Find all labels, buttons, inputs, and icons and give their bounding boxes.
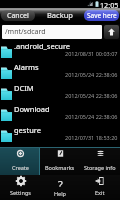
staticText: 2012/07/31 18:53:20: [65, 134, 118, 141]
staticText: Bookmarks: [45, 164, 75, 171]
staticText: Cancel: [7, 11, 29, 21]
staticText: gesture: [14, 125, 41, 135]
staticText: Create: [12, 164, 29, 171]
staticText: Backup: [47, 10, 73, 20]
staticText: Alarms: [14, 62, 39, 72]
button[interactable]: DCIM: [0, 82, 120, 103]
staticText: 2012/05/24 22:38:06: [65, 113, 118, 120]
staticText: ?: [58, 177, 63, 187]
staticText: Help: [54, 190, 66, 197]
staticText: DCIM: [14, 83, 34, 93]
button[interactable]: Save here: [84, 10, 119, 21]
staticText: Save here: [87, 11, 117, 20]
button[interactable]: Settings: [0, 175, 40, 200]
staticText: 2012/08/31 00:03:07: [65, 50, 118, 57]
button[interactable]: gesture: [0, 124, 120, 145]
staticText: .android_secure: [14, 41, 71, 51]
button[interactable]: Bookmarks: [40, 148, 80, 175]
staticText: Settings: [10, 189, 31, 196]
staticText: Exit: [95, 189, 105, 196]
button[interactable]: ?: [40, 175, 80, 200]
button[interactable]: Up one level: [104, 25, 119, 39]
button[interactable]: Alarms: [0, 61, 120, 82]
staticText: 12:05: [100, 0, 119, 8]
button[interactable]: Exit: [80, 175, 120, 200]
staticText: Storage info: [84, 164, 116, 171]
button[interactable]: Storage info: [80, 148, 120, 175]
button[interactable]: .android_secure: [0, 40, 120, 61]
button[interactable]: Download: [0, 103, 120, 124]
staticText: /mnt/sdcard: [5, 27, 46, 37]
staticText: 2012/05/24 22:38:06: [65, 92, 118, 99]
staticText: 2012/05/24 22:38:06: [65, 71, 118, 78]
button[interactable]: Create: [0, 148, 40, 175]
button[interactable]: Cancel: [1, 10, 35, 21]
button[interactable]: /mnt/sdcard: [2, 25, 102, 39]
staticText: Download: [14, 104, 50, 114]
